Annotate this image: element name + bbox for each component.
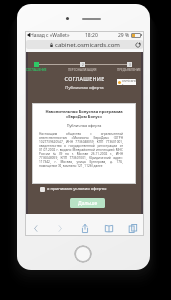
button[interactable]: Bookmarks xyxy=(102,222,116,235)
staticText: Публичная оферта xyxy=(32,123,136,128)
button[interactable]: Accept offer checkbox xyxy=(40,187,45,192)
button[interactable]: Step 2 personalization xyxy=(80,62,85,67)
staticText: СОГЛАШЕНИЕ xyxy=(26,68,47,72)
staticText: 3 xyxy=(129,63,131,67)
staticText: 18:20 xyxy=(85,32,98,39)
staticText: Публичная оферта xyxy=(25,85,144,91)
staticText: osmicards xyxy=(122,79,136,85)
button[interactable]: Tabs xyxy=(126,222,140,235)
button[interactable]: Share xyxy=(78,222,92,235)
staticText: Накопительная Бонусная программа «ЕвроДо… xyxy=(39,109,129,119)
button[interactable]: Home xyxy=(74,245,92,263)
button[interactable]: Step 3 issue xyxy=(127,62,132,67)
button[interactable]: Osmicards logo xyxy=(117,79,136,85)
staticText: 29 % xyxy=(118,32,130,39)
button[interactable]: Reload xyxy=(134,41,141,48)
staticText: ПРЕДЪЯВЛЕНИЕ xyxy=(117,68,141,72)
staticText: ПЕРСОНАЛИЗАЦИЯ xyxy=(68,68,97,72)
button[interactable]: Дальше xyxy=(70,198,105,208)
staticText: 2 xyxy=(82,63,84,67)
staticText: я принимаю условия оферты xyxy=(47,186,107,192)
staticText: Дальше xyxy=(78,200,98,207)
button[interactable]: Address bar xyxy=(26,40,143,49)
staticText: cabinet.osmicards.com xyxy=(55,41,120,49)
staticText: Назад с «Wallet» xyxy=(30,32,70,39)
staticText: Настоящим общество с ограниченной ответс… xyxy=(39,132,123,168)
button[interactable]: Back xyxy=(29,222,43,235)
staticText: СОГЛАШЕНИЕ xyxy=(25,75,144,82)
button[interactable]: Forward xyxy=(53,222,67,235)
